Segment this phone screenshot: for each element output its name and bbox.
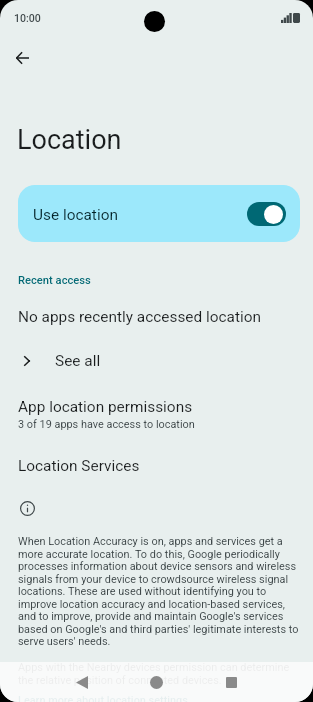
staticText: App location permissions [18, 398, 193, 416]
staticText: 3 of 19 apps have access to location [18, 418, 195, 431]
staticText: When Location Accuracy is on, apps and s… [18, 535, 283, 548]
button[interactable]: Learn more about location settings [0, 0, 170, 13]
button[interactable]: Home [134, 662, 179, 702]
button[interactable]: See all [0, 351, 313, 381]
other: About location [20, 501, 35, 516]
staticText: processes information about device senso… [18, 560, 297, 573]
button[interactable]: Back [59, 662, 104, 702]
staticText: improve location accuracy and location-b… [18, 598, 285, 611]
staticText: Use location [33, 206, 118, 224]
staticText: signals from your device to crowdsource … [18, 573, 289, 586]
staticText: the relative position of connected devic… [18, 674, 222, 687]
staticText: Location Services [18, 457, 140, 475]
button[interactable]: Use location [18, 185, 300, 242]
staticText: and to improve, provide and maintain Goo… [18, 610, 284, 623]
staticText: Apps with the Nearby devices permission … [18, 661, 290, 674]
button[interactable]: Location Services [0, 452, 313, 486]
staticText: Location [17, 124, 122, 156]
staticText: Recent access [18, 274, 91, 287]
staticText: See all [55, 352, 101, 370]
staticText: based on Google's and third parties' leg… [18, 623, 299, 636]
staticText: No apps recently accessed location [18, 308, 262, 326]
staticText: more accurate location. To do this, Goog… [18, 548, 280, 561]
button[interactable]: Navigate up [4, 40, 40, 76]
button[interactable]: Recent apps [209, 662, 254, 702]
staticText: 10:00 [14, 12, 41, 24]
button[interactable]: App location permissions [0, 393, 313, 435]
staticText: serve users' needs. [18, 635, 111, 648]
staticText: locations. These are used without identi… [18, 585, 267, 598]
